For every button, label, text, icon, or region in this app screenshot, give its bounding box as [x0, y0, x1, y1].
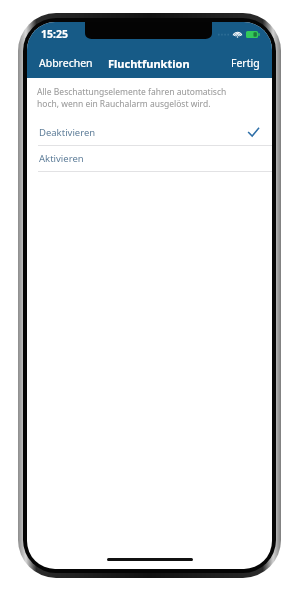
staticText: Abbrechen — [39, 56, 93, 70]
other: Ausgewählt — [248, 127, 259, 138]
staticText: Deaktivieren — [39, 126, 96, 139]
button[interactable]: Aktivieren — [27, 146, 272, 171]
button[interactable]: Abbrechen — [27, 48, 103, 78]
button[interactable]: Deaktivieren — [27, 120, 272, 145]
staticText: Alle Beschattungselemente fahren automat… — [37, 86, 227, 110]
staticText: Fertig — [231, 56, 260, 70]
staticText: 15:25 — [41, 27, 68, 41]
button[interactable]: Fertig — [195, 48, 272, 78]
staticText: Fluchtfunktion — [108, 56, 190, 71]
staticText: Aktivieren — [39, 152, 84, 165]
